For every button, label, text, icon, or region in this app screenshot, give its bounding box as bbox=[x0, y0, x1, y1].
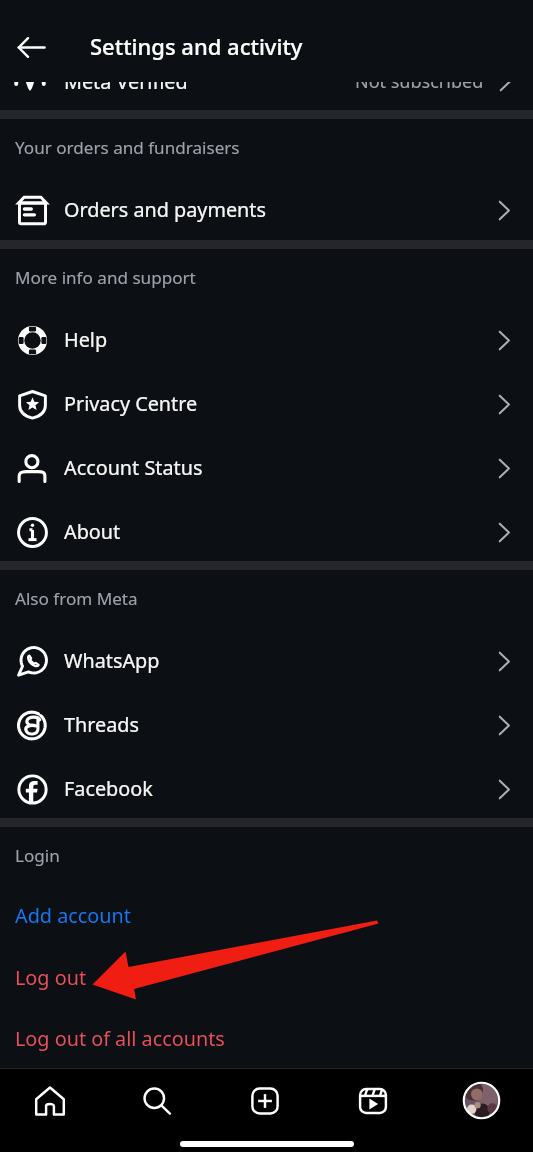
button[interactable]: Log out of all accounts bbox=[0, 1008, 533, 1069]
button[interactable]: Orders and payments bbox=[0, 176, 533, 240]
staticText: Settings and activity bbox=[90, 31, 303, 61]
staticText: Facebook bbox=[64, 775, 153, 802]
staticText: About bbox=[64, 518, 121, 545]
button[interactable]: Home bbox=[0, 1069, 103, 1132]
button[interactable]: Help bbox=[0, 306, 533, 370]
button[interactable]: Create bbox=[212, 1069, 318, 1132]
staticText: Log out of all accounts bbox=[15, 1025, 225, 1052]
button[interactable]: Reels bbox=[320, 1069, 426, 1132]
button[interactable]: Search bbox=[104, 1069, 210, 1132]
staticText: Add account bbox=[15, 902, 131, 929]
button[interactable]: Threads bbox=[0, 691, 533, 755]
staticText: Threads bbox=[64, 711, 139, 738]
button[interactable]: Back bbox=[6, 22, 56, 72]
button[interactable]: Add account bbox=[0, 884, 533, 946]
staticText: WhatsApp bbox=[64, 647, 160, 674]
staticText: Orders and payments bbox=[64, 196, 266, 223]
staticText: More info and support bbox=[15, 266, 196, 289]
staticText: Help bbox=[64, 326, 108, 353]
button[interactable]: Facebook bbox=[0, 755, 533, 819]
staticText: Account Status bbox=[64, 454, 203, 481]
button[interactable]: Log out bbox=[0, 946, 533, 1008]
button[interactable]: About bbox=[0, 498, 533, 562]
button[interactable]: Meta Verified bbox=[0, 49, 533, 110]
staticText: Privacy Centre bbox=[64, 390, 198, 417]
staticText: Not subscribed bbox=[355, 69, 484, 94]
button[interactable]: WhatsApp bbox=[0, 627, 533, 691]
staticText: Login bbox=[15, 844, 60, 867]
button[interactable]: Privacy Centre bbox=[0, 370, 533, 434]
staticText: Log out bbox=[15, 964, 87, 991]
staticText: Also from Meta bbox=[15, 587, 138, 610]
button[interactable]: Account Status bbox=[0, 434, 533, 498]
staticText: Meta Verified bbox=[64, 68, 188, 95]
staticText: Your orders and fundraisers bbox=[15, 136, 240, 159]
button[interactable]: Profile bbox=[428, 1069, 533, 1132]
